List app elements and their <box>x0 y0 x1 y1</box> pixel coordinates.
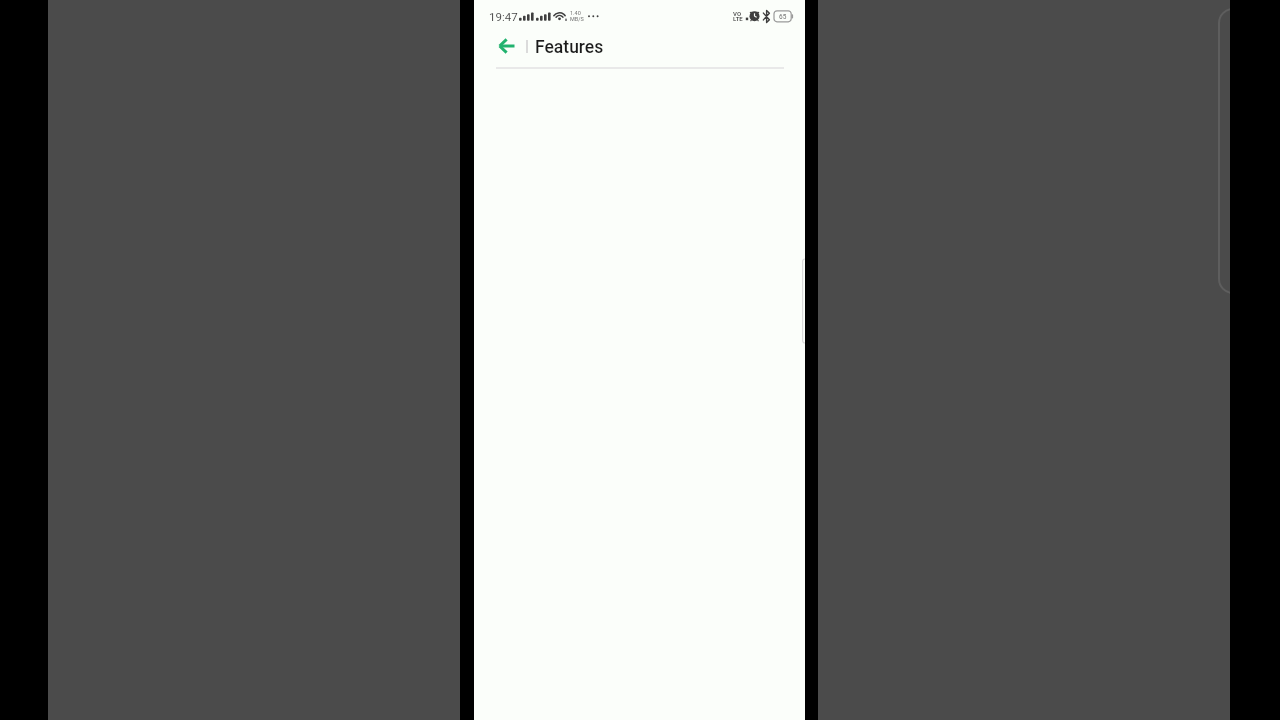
staticText: VO <box>733 10 742 17</box>
button[interactable] <box>494 34 520 58</box>
staticText: Features <box>535 37 604 58</box>
staticText: 1.40 <box>570 10 581 16</box>
staticText: 19:47 <box>489 10 518 23</box>
staticText: MB/S <box>570 16 584 22</box>
staticText: 65 <box>779 13 787 21</box>
staticText: LTE <box>733 15 743 22</box>
